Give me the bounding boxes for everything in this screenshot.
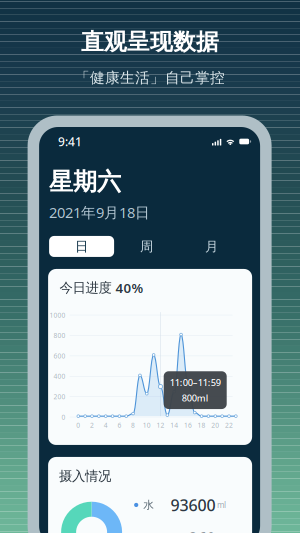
staticText: 6 (117, 421, 121, 430)
staticText: 40% (116, 279, 144, 297)
staticText: 周 (140, 238, 153, 255)
staticText: 400 (54, 372, 66, 381)
button[interactable]: 日 (49, 236, 114, 257)
staticText: 18 (198, 421, 206, 430)
staticText: 2021年9月18日 (49, 202, 150, 222)
staticText: 20 (211, 421, 219, 430)
staticText: 3600 (189, 528, 216, 533)
staticText: 4 (104, 421, 108, 430)
staticText: 星期六 (49, 167, 121, 196)
staticText: 600 (54, 351, 66, 360)
staticText: 今日进度 (60, 280, 112, 296)
staticText: 10 (143, 421, 151, 430)
staticText: 0 (76, 421, 80, 430)
staticText: 1000 (50, 311, 66, 320)
staticText: 93600 (171, 494, 216, 515)
staticText: ml (217, 500, 226, 510)
button[interactable]: 月 (179, 236, 244, 257)
staticText: 「健康生活」自己掌控 (75, 69, 225, 87)
staticText: 11:00–11:59 (170, 376, 221, 389)
staticText: 800ml (182, 392, 209, 404)
staticText: 8 (131, 421, 135, 430)
staticText: 0 (62, 413, 66, 422)
staticText: 月 (205, 238, 218, 255)
staticText: 摄入情况 (59, 468, 111, 484)
staticText: 16 (184, 421, 192, 430)
staticText: 12 (156, 421, 164, 430)
staticText: 2 (90, 421, 94, 430)
staticText: 800 (54, 331, 66, 340)
staticText: 14 (170, 421, 178, 430)
staticText: 日 (75, 238, 88, 255)
button[interactable]: 周 (114, 236, 179, 257)
staticText: 200 (54, 392, 66, 401)
staticText: 水 (143, 498, 154, 511)
staticText: 22 (225, 421, 233, 430)
staticText: 直观呈现数据 (81, 28, 219, 56)
staticText: 9:41 (58, 133, 82, 149)
